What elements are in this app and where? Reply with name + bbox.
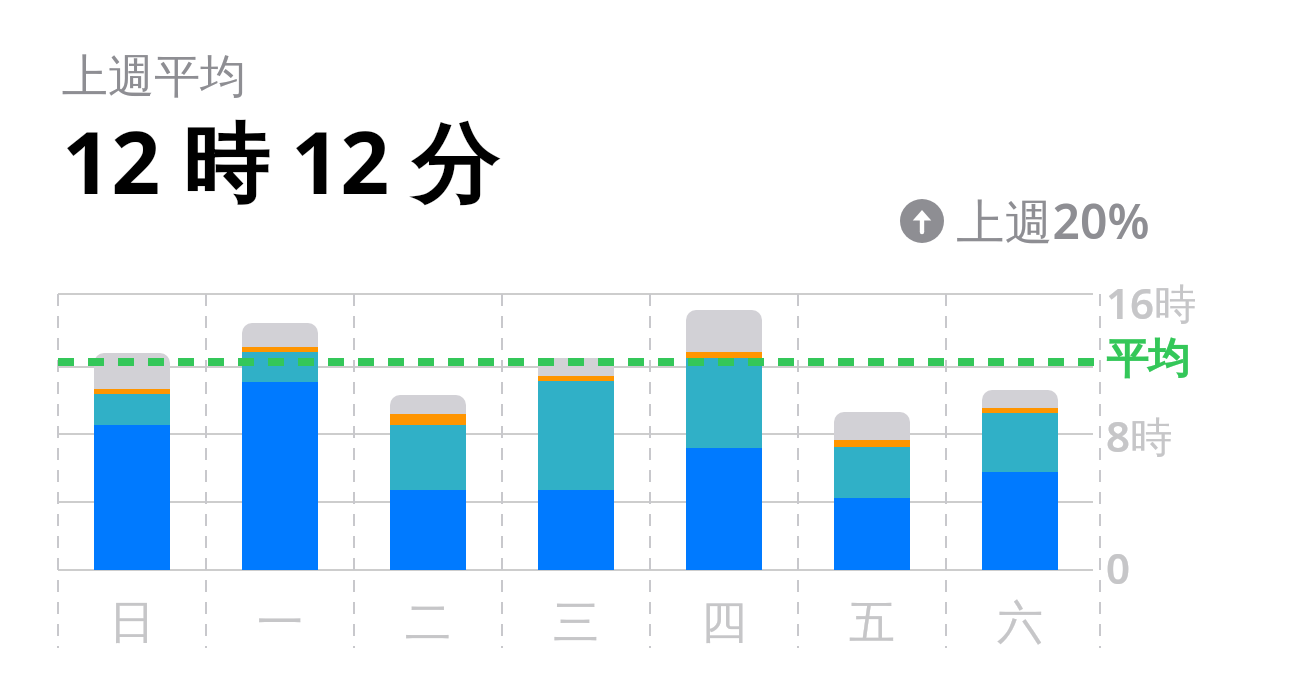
staticText: 二	[405, 594, 451, 652]
button[interactable]: 日	[58, 586, 206, 660]
staticText: 0	[1106, 539, 1131, 596]
button[interactable]: 一	[206, 586, 354, 660]
staticText: 六	[997, 594, 1043, 652]
staticText: 上週平均	[62, 48, 246, 106]
button[interactable]: 上週增加	[898, 186, 1152, 256]
staticText: 一	[257, 594, 303, 652]
button[interactable]: 四	[650, 586, 798, 660]
staticText: 12 時 12 分	[62, 102, 498, 219]
staticText: 四	[701, 594, 747, 652]
staticText: 16時	[1106, 274, 1197, 331]
button[interactable]: 二	[354, 586, 502, 660]
staticText: 平均	[1106, 333, 1190, 386]
button[interactable]: 六	[946, 586, 1094, 660]
button[interactable]: 五	[798, 586, 946, 660]
staticText: 8時	[1106, 407, 1173, 464]
staticText: 五	[849, 594, 895, 652]
other: 上週增加	[900, 199, 944, 243]
staticText: 三	[553, 594, 599, 652]
button[interactable]: 三	[502, 586, 650, 660]
staticText: 上週20%	[944, 188, 1150, 254]
staticText: 日	[109, 594, 155, 652]
